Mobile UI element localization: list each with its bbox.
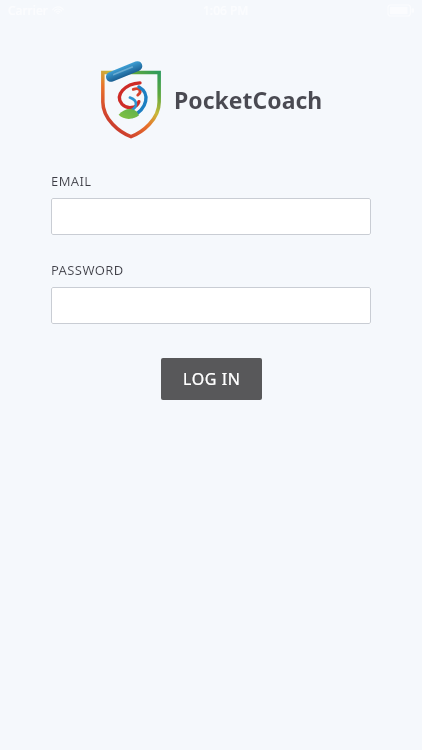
- staticText: LOG IN: [183, 368, 241, 390]
- button[interactable]: Password input: [51, 287, 371, 324]
- button[interactable]: LOG IN: [161, 358, 262, 400]
- staticText: PASSWORD: [51, 261, 124, 279]
- button[interactable]: Email input: [51, 198, 371, 235]
- staticText: PocketCoach: [174, 84, 323, 115]
- staticText: EMAIL: [51, 172, 92, 190]
